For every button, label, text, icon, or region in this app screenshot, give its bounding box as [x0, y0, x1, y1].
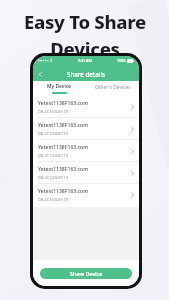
staticText: Yetext1138F163.com: [38, 188, 89, 195]
staticText: Yetext1138F163.com: [38, 122, 89, 129]
button[interactable]: Yetext1138F163.com: [33, 96, 139, 118]
button[interactable]: Other's Devices: [86, 81, 139, 96]
staticText: Yetext1138F163.com: [38, 100, 89, 107]
button[interactable]: Yetext1138F163.com: [33, 118, 139, 140]
staticText: Yetext1138F163.com: [38, 166, 89, 173]
button[interactable]: Yetext1138F163.com: [33, 184, 139, 206]
staticText: Yetext1138F163.com: [38, 144, 89, 151]
staticText: DB-2C1/2020110: [38, 175, 68, 180]
staticText: DB-2C1/2020110: [38, 197, 68, 202]
button[interactable]: Back: [33, 67, 47, 81]
staticText: Other's Devices: [95, 84, 131, 91]
staticText: DB-2C1/2020110: [38, 153, 68, 158]
staticText: Share details: [67, 70, 106, 78]
staticText: 9:41 AM: [78, 58, 92, 63]
staticText: Share Device: [70, 270, 103, 277]
staticText: My Device: [47, 83, 72, 90]
button[interactable]: Yetext1138F163.com: [33, 162, 139, 184]
staticText: DB-2C1/2020110: [38, 109, 68, 114]
staticText: DB-2C1/2020110: [38, 131, 68, 136]
button[interactable]: Yetext1138F163.com: [33, 140, 139, 162]
staticText: Devices: [50, 36, 120, 61]
button[interactable]: Share Device: [40, 268, 132, 279]
staticText: 100%: [117, 58, 126, 63]
button[interactable]: My Device: [33, 81, 86, 96]
staticText: Easy To Share: [24, 9, 146, 34]
